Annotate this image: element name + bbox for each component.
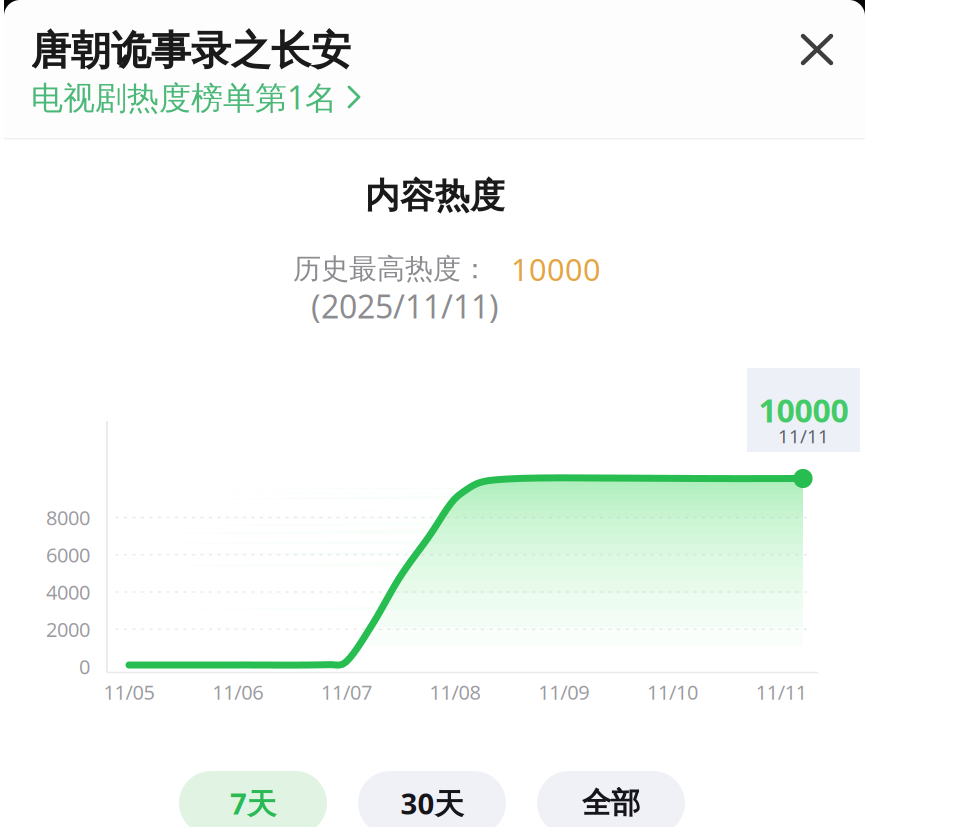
staticText: 6000: [46, 541, 90, 568]
staticText: (2025/11/11): [311, 285, 499, 327]
staticText: 2000: [46, 616, 90, 643]
staticText: 11/07: [321, 679, 372, 705]
button[interactable]: Close: [0, 0, 960, 827]
staticText: 电视剧热度榜单第1名: [31, 76, 337, 118]
staticText: 10000: [758, 389, 848, 431]
staticText: 10000: [511, 249, 601, 289]
staticText: 内容热度: [365, 175, 505, 217]
staticText: 30天: [400, 783, 463, 822]
staticText: 4000: [46, 579, 90, 605]
staticText: 7天: [230, 783, 276, 822]
button[interactable]: 电视剧热度榜单第1名: [0, 0, 332, 34]
button[interactable]: 7天: [179, 771, 327, 827]
staticText: 11/10: [647, 679, 698, 705]
staticText: 全部: [582, 785, 640, 821]
staticText: 11/06: [212, 679, 263, 705]
button[interactable]: 全部: [537, 771, 685, 827]
staticText: 11/11: [778, 424, 829, 448]
staticText: 11/11: [756, 679, 807, 705]
staticText: 历史最高热度：: [293, 252, 489, 286]
staticText: 唐朝诡事录之长安: [31, 26, 351, 75]
button[interactable]: 30天: [358, 771, 506, 827]
staticText: 11/08: [430, 679, 481, 705]
staticText: 0: [79, 653, 90, 680]
staticText: 8000: [46, 504, 90, 531]
staticText: 11/09: [538, 679, 589, 705]
staticText: 11/05: [103, 679, 154, 705]
